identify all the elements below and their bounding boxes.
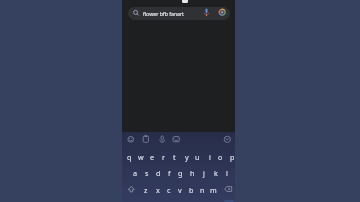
staticText: z (144, 185, 148, 195)
staticText: u (195, 152, 200, 162)
button[interactable]: j (198, 167, 209, 178)
staticText: o (218, 152, 223, 162)
staticText: s (145, 168, 149, 178)
button[interactable]: m (208, 184, 219, 195)
staticText: l (226, 168, 228, 178)
staticText: i (209, 152, 211, 162)
button[interactable]: b (186, 184, 197, 195)
staticText: d (156, 168, 161, 178)
button[interactable]: e (147, 151, 158, 162)
button[interactable]: x (152, 184, 163, 195)
button[interactable]: s (141, 167, 152, 178)
staticText: j (203, 168, 205, 178)
staticText: p (230, 152, 235, 162)
staticText: t (173, 152, 176, 162)
button[interactable]: y (181, 151, 192, 162)
button[interactable]: n (197, 184, 208, 195)
staticText: h (190, 168, 195, 178)
button[interactable]: u (192, 151, 203, 162)
button[interactable]: k (210, 167, 221, 178)
staticText: w (138, 152, 144, 162)
button[interactable]: o (215, 151, 226, 162)
button[interactable]: w (135, 151, 146, 162)
staticText: a (133, 168, 138, 178)
staticText: e (150, 152, 155, 162)
button[interactable]: t (169, 151, 180, 162)
button[interactable]: g (175, 167, 186, 178)
staticText: x (156, 185, 160, 195)
staticText: q (127, 152, 132, 162)
staticText: k (214, 168, 218, 178)
button[interactable]: c (163, 184, 174, 195)
staticText: flower bfb fanart (143, 10, 184, 17)
button[interactable]: p (227, 151, 238, 162)
staticText: g (178, 168, 183, 178)
staticText: y (185, 152, 189, 162)
button[interactable]: f (164, 167, 175, 178)
button[interactable] (128, 7, 230, 20)
button[interactable]: a (130, 167, 141, 178)
staticText: r (162, 152, 165, 162)
button[interactable]: r (158, 151, 169, 162)
staticText: f (168, 168, 171, 178)
button[interactable]: h (187, 167, 198, 178)
staticText: n (200, 185, 205, 195)
button[interactable]: q (124, 151, 135, 162)
button[interactable]: z (140, 184, 151, 195)
button[interactable]: v (174, 184, 185, 195)
staticText: m (210, 185, 217, 195)
button[interactable]: i (204, 151, 215, 162)
button[interactable]: d (153, 167, 164, 178)
staticText: v (178, 185, 182, 195)
staticText: b (189, 185, 194, 195)
staticText: c (167, 185, 171, 195)
button[interactable]: l (221, 167, 232, 178)
